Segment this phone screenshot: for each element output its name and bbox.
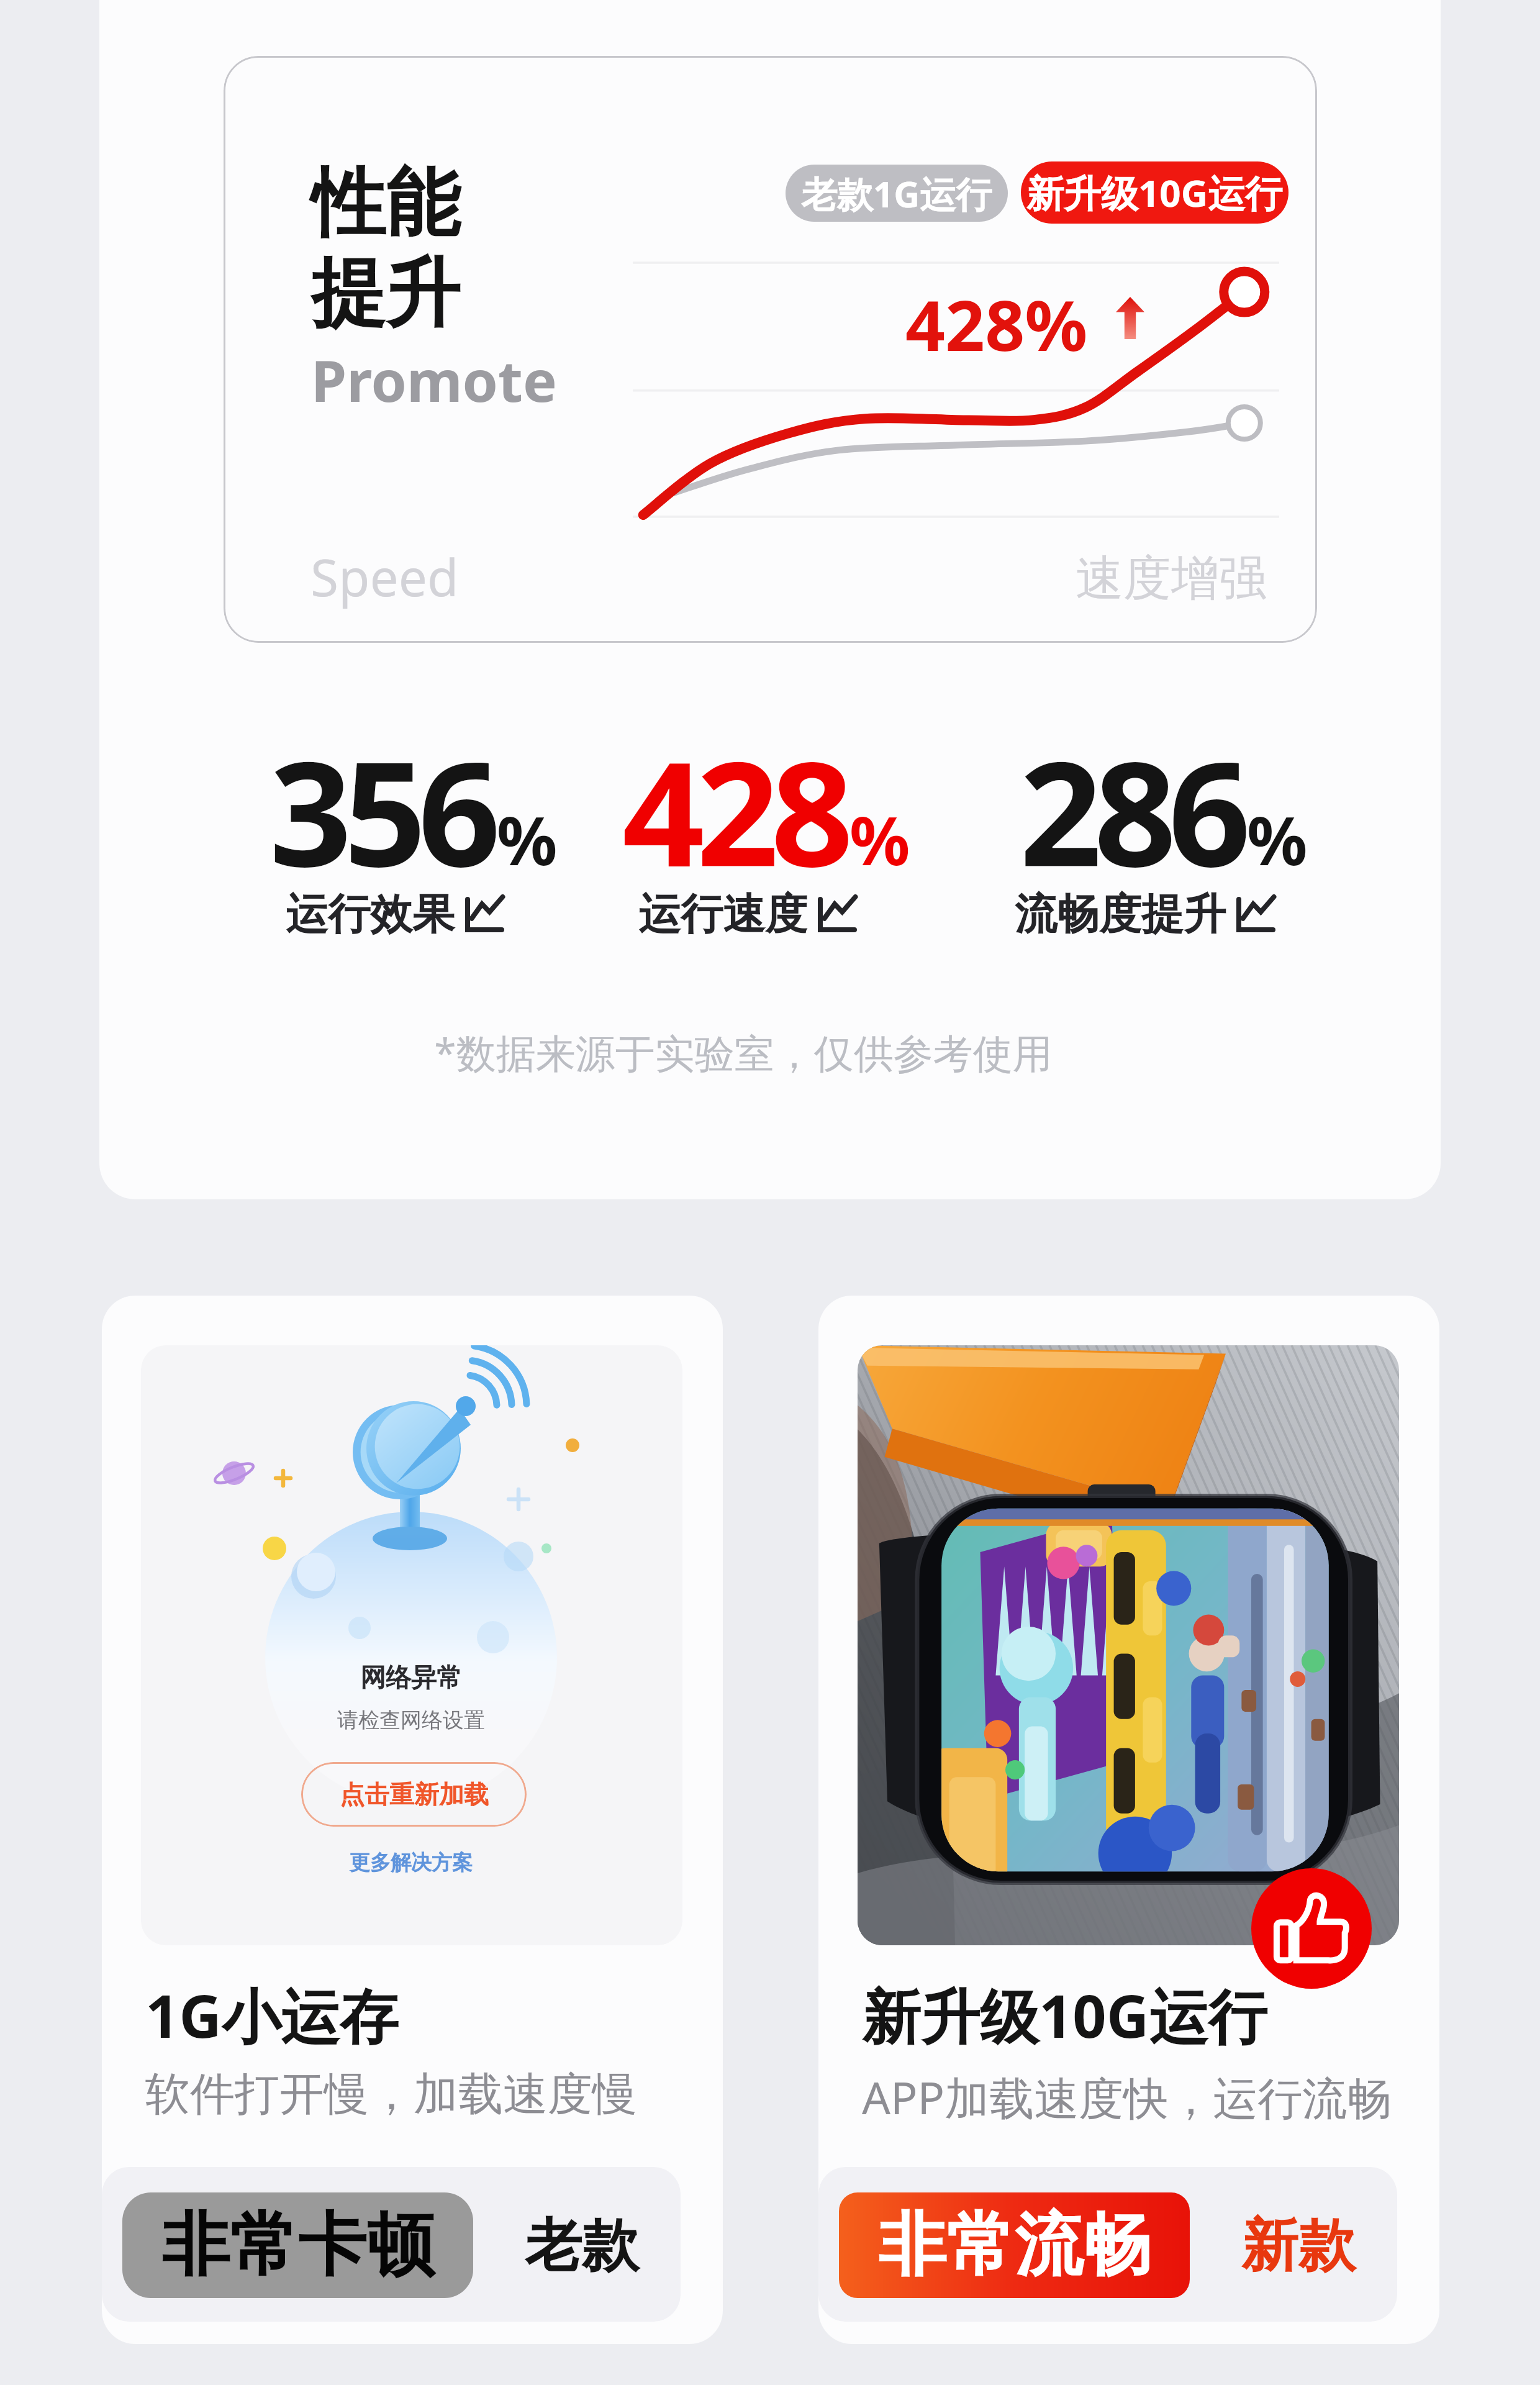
staticText: % [849, 794, 910, 885]
staticText: APP加载速度快，运行流畅 [862, 2066, 1392, 2127]
button[interactable]: 点赞 [1251, 1868, 1372, 1989]
staticText: 新升级10G运行 [1026, 167, 1283, 218]
button[interactable]: 新升级10G运行 [1021, 161, 1289, 224]
staticText: 1G小运存 [145, 1974, 399, 2055]
staticText: 性能 [311, 157, 460, 250]
staticText: % [497, 794, 558, 885]
staticText: 老款1G运行 [801, 169, 992, 218]
staticText: Speed [310, 542, 459, 611]
staticText: 请检查网络设置 [337, 1707, 485, 1733]
staticText: 356 [269, 712, 493, 909]
staticText: 新款 [1241, 2210, 1356, 2282]
staticText: 运行速度 [638, 888, 807, 942]
staticText: 流畅度提升 [1015, 888, 1226, 942]
staticText: 软件打开慢，加载速度慢 [145, 2066, 637, 2123]
button[interactable]: 点击重新加载 [301, 1762, 527, 1827]
button[interactable]: 非常流畅 [839, 2192, 1190, 2298]
button[interactable]: 非常卡顿 [122, 2192, 473, 2298]
button[interactable]: 点赞 [818, 1296, 1439, 2344]
staticText: *数据来源于实验室，仅供参考使用 [396, 1025, 1091, 1079]
staticText: 新升级10G运行 [862, 1974, 1267, 2055]
staticText: 老款 [525, 2210, 639, 2282]
staticText: 运行效果 [286, 888, 455, 942]
button[interactable]: 老款1G运行 [786, 165, 1008, 222]
staticText: Promote [311, 341, 557, 419]
button[interactable]: 更多解决方案 [350, 1850, 473, 1876]
staticText: 网络异常 [360, 1662, 462, 1694]
staticText: 286 [1020, 712, 1243, 909]
staticText: 提升 [311, 247, 460, 340]
staticText: 非常卡顿 [161, 2202, 435, 2289]
staticText: 非常流畅 [878, 2202, 1151, 2289]
staticText: 428% [905, 276, 1088, 371]
staticText: % [1247, 794, 1308, 885]
button[interactable]: 网络异常 [102, 1296, 723, 2344]
staticText: 点击重新加载 [340, 1779, 489, 1810]
staticText: 速度增强 [1076, 548, 1267, 609]
staticText: 428 [622, 712, 846, 909]
